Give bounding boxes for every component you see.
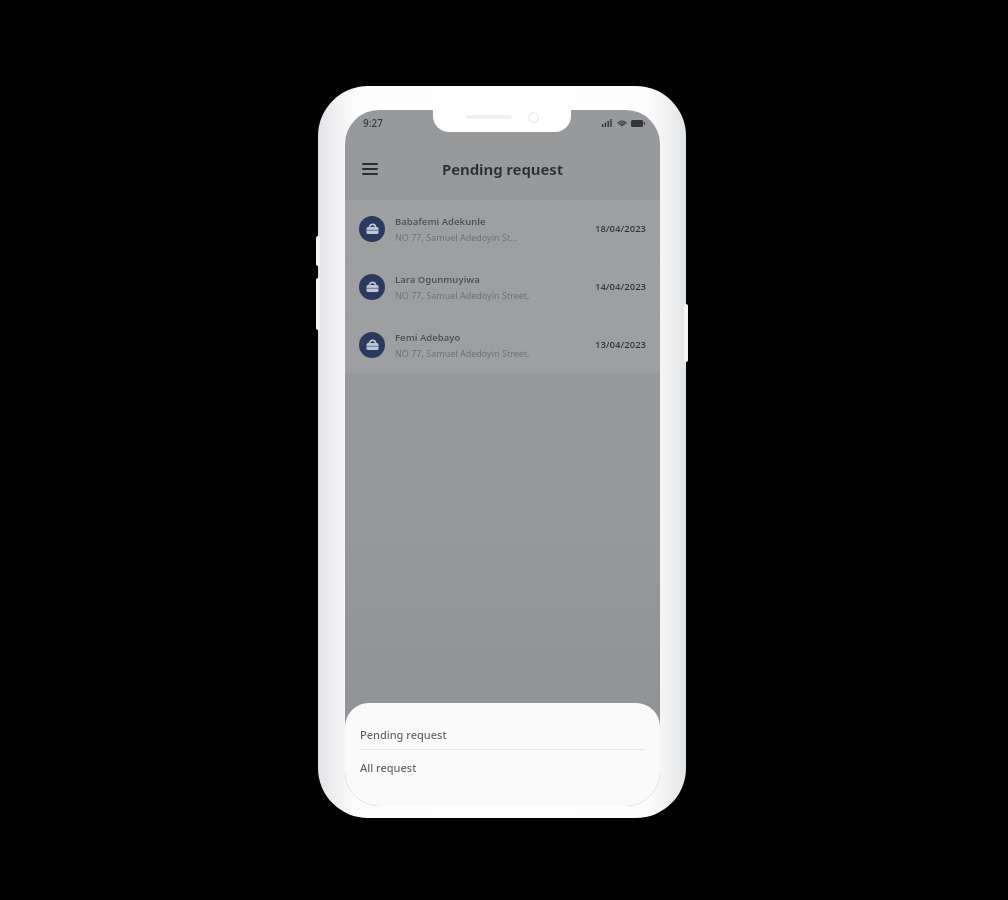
button[interactable]: All request [345,750,660,784]
button[interactable]: Femi Adebayo [345,316,660,373]
button[interactable]: Pending request [345,719,660,749]
button[interactable]: Babafemi Adekunle [345,200,660,257]
staticText: All request [360,760,417,775]
staticText: Lara Ogunmuyiwa [395,273,480,286]
staticText: Babafemi Adekunle [395,215,486,228]
staticText: 9:27 [363,116,383,130]
staticText: NO 77, Samuel Adedoyin Street, [395,289,530,301]
staticText: Pending request [360,727,447,742]
staticText: 14/04/2023 [594,280,646,293]
button[interactable]: Open navigation menu [353,152,387,186]
staticText: NO 77, Samuel Adedoyin Street, [395,347,530,359]
staticText: Femi Adebayo [395,331,461,344]
staticText: 18/04/2023 [594,222,646,235]
staticText: NO 77, Samuel Adedoyin St… [395,231,518,243]
staticText: 13/04/2023 [594,338,646,351]
button[interactable]: Lara Ogunmuyiwa [345,258,660,315]
staticText: Pending request [442,159,564,179]
